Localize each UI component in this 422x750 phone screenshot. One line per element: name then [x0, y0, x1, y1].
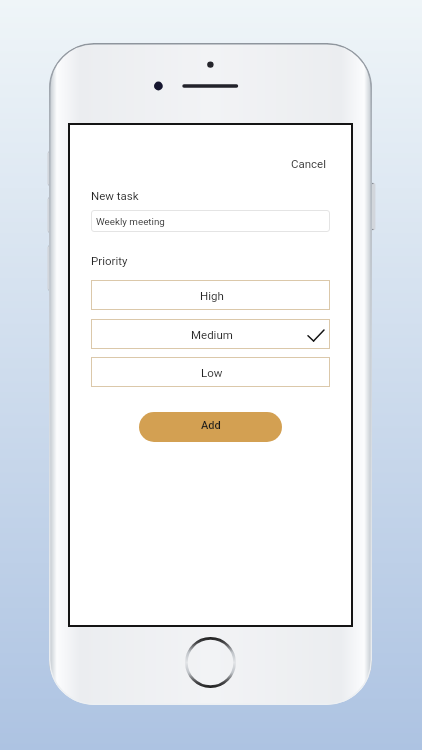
button[interactable]: Low: [91, 357, 330, 387]
staticText: High: [200, 289, 224, 302]
staticText: New task: [91, 189, 139, 202]
button[interactable]: Cancel: [291, 157, 327, 170]
button[interactable]: High: [91, 280, 330, 310]
staticText: Cancel: [291, 157, 327, 170]
button[interactable]: Add: [139, 412, 282, 442]
staticText: Add: [201, 419, 221, 432]
other: Selected: [308, 330, 324, 341]
staticText: Medium: [191, 328, 233, 341]
staticText: Low: [201, 366, 223, 379]
button[interactable]: Weekly meeting: [91, 210, 330, 232]
staticText: Weekly meeting: [96, 216, 165, 227]
staticText: Priority: [91, 254, 128, 267]
button[interactable]: Medium: [91, 319, 330, 349]
